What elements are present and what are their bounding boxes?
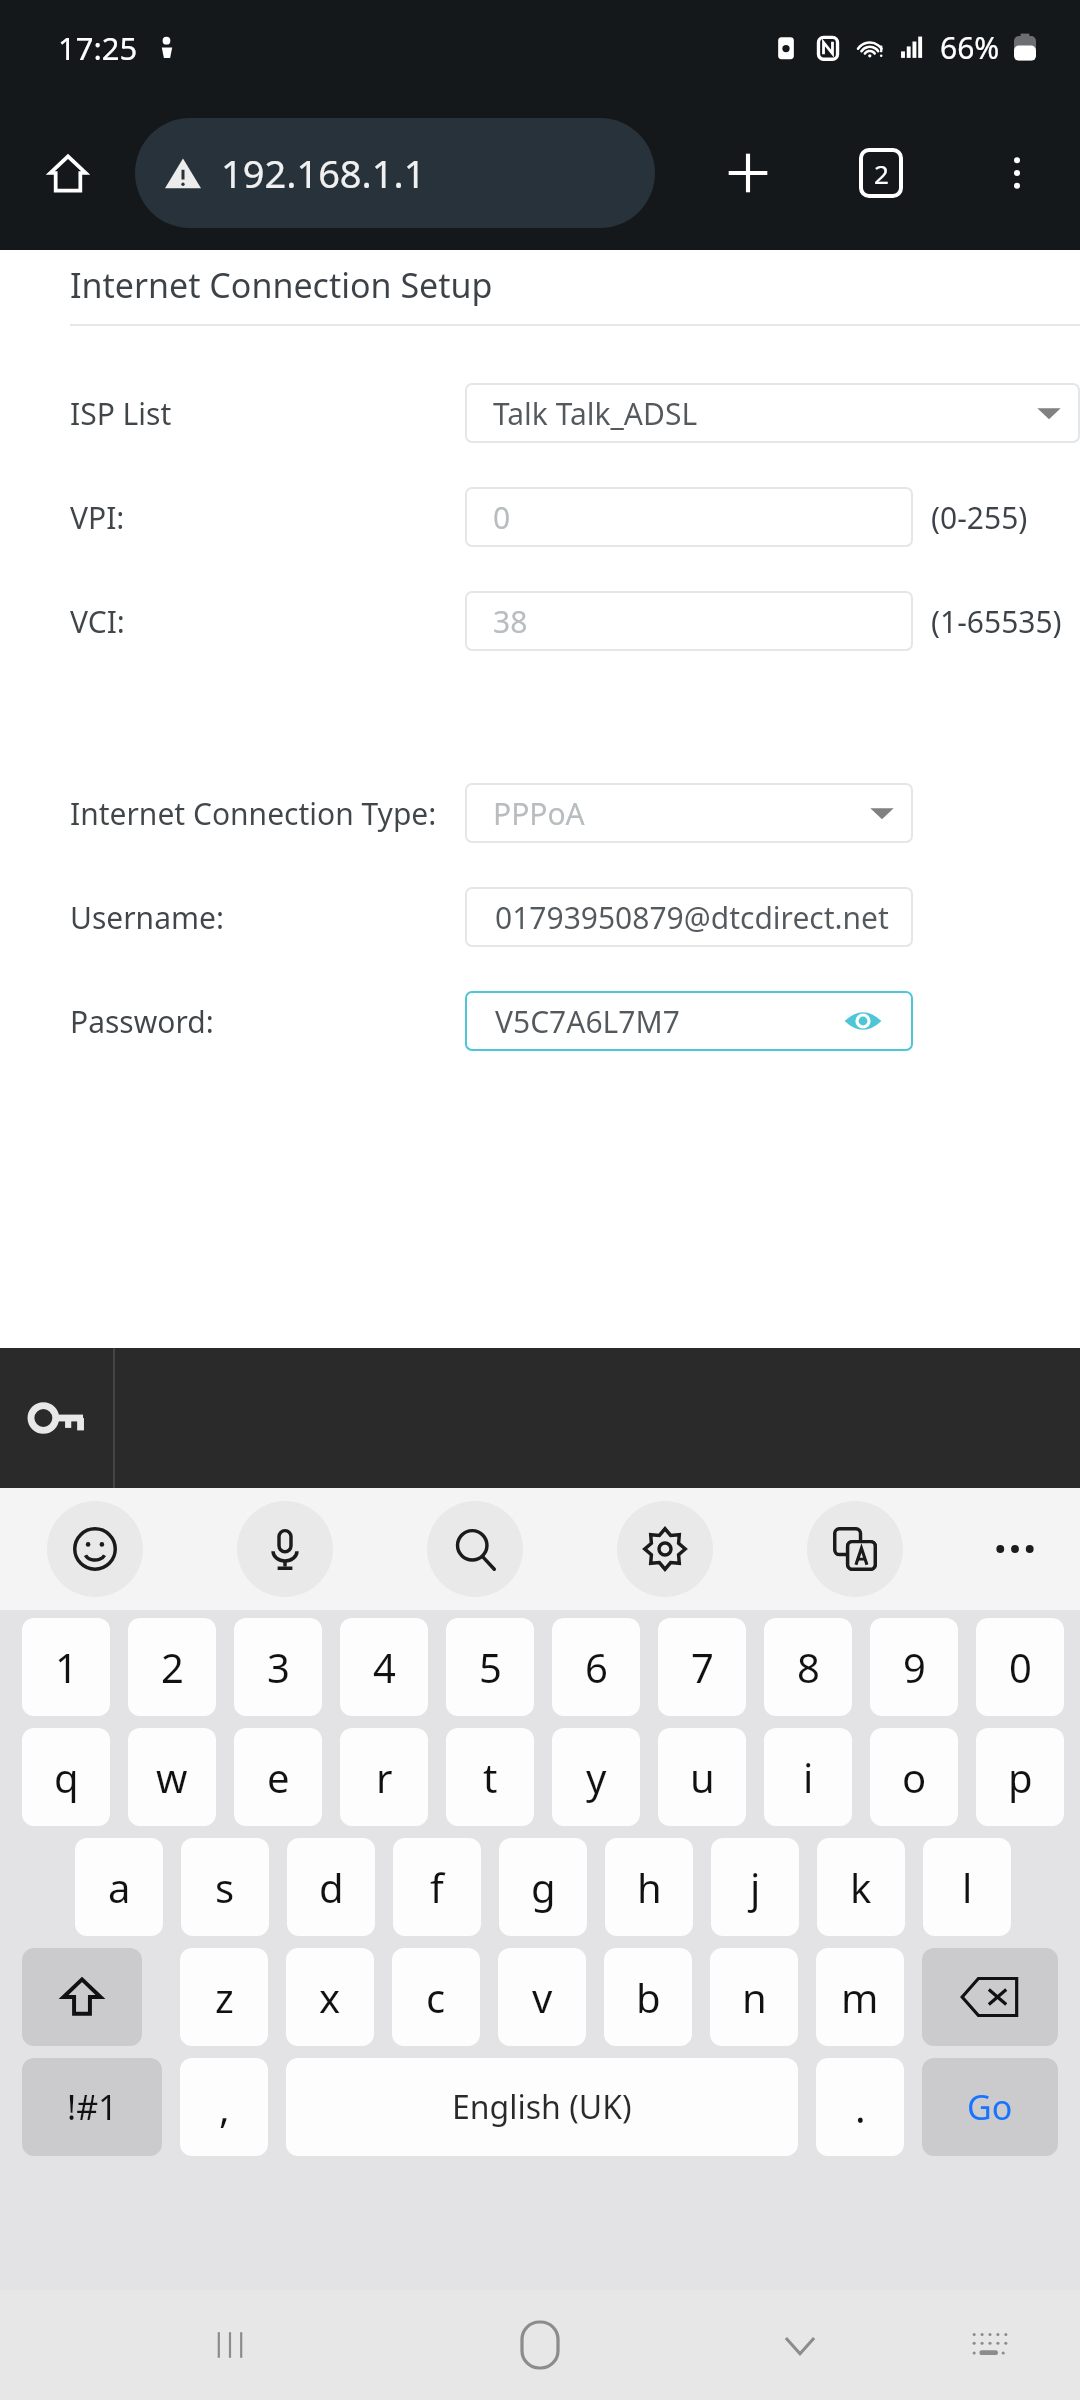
staticText: English (UK) (452, 2085, 632, 2129)
staticText: y (586, 1750, 607, 1804)
button[interactable]: v (498, 1948, 586, 2046)
staticText: 66% (940, 27, 1000, 68)
staticText: Password: (70, 1001, 214, 1042)
button[interactable]: Translate (807, 1501, 903, 1597)
button[interactable]: Shift (22, 1948, 142, 2046)
staticText: 9 (903, 1640, 926, 1694)
button[interactable]: r (340, 1728, 428, 1826)
staticText: h (637, 1860, 662, 1914)
button[interactable]: 5 (446, 1618, 534, 1716)
button[interactable]: Tabs (838, 130, 924, 216)
staticText: w (156, 1750, 188, 1804)
button[interactable]: Go (922, 2058, 1058, 2156)
button[interactable]: Backspace (922, 1948, 1058, 2046)
button[interactable]: w (128, 1728, 216, 1826)
staticText: g (531, 1860, 556, 1914)
button[interactable]: h (605, 1838, 693, 1936)
button[interactable]: j (711, 1838, 799, 1936)
staticText: k (850, 1860, 872, 1914)
button[interactable]: . (816, 2058, 904, 2156)
button[interactable]: 4 (340, 1618, 428, 1716)
button[interactable]: Home (28, 133, 108, 213)
staticText: m (841, 1970, 879, 2024)
button[interactable]: b (604, 1948, 692, 2046)
button[interactable]: Switch keyboard (950, 2305, 1030, 2385)
button[interactable]: English (UK) (286, 2058, 798, 2156)
staticText: a (108, 1860, 131, 1914)
button[interactable]: d (287, 1838, 375, 1936)
button[interactable]: Search (427, 1501, 523, 1597)
staticText: o (902, 1750, 927, 1804)
staticText: !#1 (67, 2084, 118, 2130)
button[interactable]: i (764, 1728, 852, 1826)
button[interactable]: Talk Talk_ADSL (465, 383, 1080, 443)
button[interactable]: c (392, 1948, 480, 2046)
button[interactable]: s (181, 1838, 269, 1936)
button[interactable]: 38 (465, 591, 913, 651)
button[interactable]: Settings (617, 1501, 713, 1597)
button[interactable]: e (234, 1728, 322, 1826)
staticText: (0-255) (931, 497, 1028, 538)
button[interactable]: , (180, 2058, 268, 2156)
button[interactable]: m (816, 1948, 904, 2046)
button[interactable]: o (870, 1728, 958, 1826)
staticText: 6 (585, 1640, 608, 1694)
staticText: 1 (55, 1640, 78, 1694)
button[interactable]: Home (500, 2305, 580, 2385)
button[interactable]: Emoji (47, 1501, 143, 1597)
button[interactable]: 8 (764, 1618, 852, 1716)
button[interactable]: Passwords (0, 1348, 113, 1488)
staticText: u (690, 1750, 715, 1804)
button[interactable]: a (75, 1838, 163, 1936)
button[interactable]: 2 (128, 1618, 216, 1716)
button[interactable]: z (180, 1948, 268, 2046)
button[interactable]: t (446, 1728, 534, 1826)
staticText: Go (967, 2084, 1013, 2130)
button[interactable]: 1 (22, 1618, 110, 1716)
button[interactable]: q (22, 1728, 110, 1826)
staticText: Username: (70, 897, 224, 938)
staticText: 8 (797, 1640, 820, 1694)
button[interactable]: y (552, 1728, 640, 1826)
button[interactable]: More (967, 1501, 1063, 1597)
button[interactable]: Voice input (237, 1501, 333, 1597)
staticText: ISP List (70, 393, 172, 434)
button[interactable]: New tab (705, 130, 791, 216)
staticText: c (426, 1970, 446, 2024)
button[interactable]: l (923, 1838, 1011, 1936)
button[interactable]: x (286, 1948, 374, 2046)
button[interactable]: V5C7A6L7M7 (465, 991, 913, 1051)
button[interactable]: 0 (976, 1618, 1064, 1716)
button[interactable]: g (499, 1838, 587, 1936)
button[interactable]: Recents (190, 2305, 270, 2385)
staticText: j (750, 1860, 761, 1914)
staticText: 5 (479, 1640, 502, 1694)
staticText: PPPoA (493, 793, 585, 834)
staticText: 01793950879@dtcdirect.net (495, 897, 889, 938)
button[interactable]: 0 (465, 487, 913, 547)
button[interactable]: 9 (870, 1618, 958, 1716)
button[interactable]: f (393, 1838, 481, 1936)
button[interactable]: Hide keyboard (760, 2305, 840, 2385)
button[interactable]: n (710, 1948, 798, 2046)
button[interactable]: 192.168.1.1 (135, 118, 655, 228)
button[interactable]: More options (974, 130, 1060, 216)
staticText: 192.168.1.1 (221, 147, 426, 199)
button[interactable]: !#1 (22, 2058, 162, 2156)
staticText: Internet Connection Type: (70, 793, 437, 834)
button[interactable]: 7 (658, 1618, 746, 1716)
staticText: b (636, 1970, 661, 2024)
staticText: Internet Connection Setup (70, 262, 493, 308)
staticText: , (219, 2080, 230, 2134)
staticText: n (742, 1970, 767, 2024)
button[interactable]: u (658, 1728, 746, 1826)
staticText: 3 (267, 1640, 290, 1694)
button[interactable]: PPPoA (465, 783, 913, 843)
staticText: V5C7A6L7M7 (495, 1001, 680, 1042)
button[interactable]: p (976, 1728, 1064, 1826)
button[interactable]: 3 (234, 1618, 322, 1716)
button[interactable]: 6 (552, 1618, 640, 1716)
button[interactable]: k (817, 1838, 905, 1936)
button[interactable]: 01793950879@dtcdirect.net (465, 887, 913, 947)
button[interactable]: Show password (833, 991, 893, 1051)
